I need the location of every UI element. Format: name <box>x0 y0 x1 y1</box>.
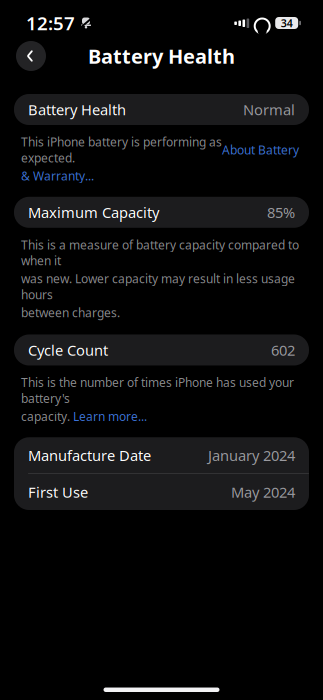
staticText: capacity. <box>21 408 73 424</box>
staticText: Battery Health <box>88 43 235 69</box>
button[interactable]: Maximum Capacity <box>14 197 309 228</box>
staticText: 602 <box>271 340 295 360</box>
button[interactable]: Battery Health <box>14 94 309 125</box>
staticText: & Warranty... <box>21 168 94 184</box>
staticText: May 2024 <box>231 482 295 502</box>
staticText: This is the number of times iPhone has u… <box>21 374 294 406</box>
staticText: Battery Health <box>28 100 126 119</box>
staticText: January 2024 <box>208 446 295 465</box>
staticText: 12:57 <box>26 11 75 35</box>
staticText: Cycle Count <box>28 340 108 360</box>
button[interactable]: Learn more... <box>73 408 147 424</box>
button[interactable]: & Warranty... <box>21 168 94 184</box>
staticText: 85% <box>267 203 295 222</box>
staticText: 34 <box>281 16 293 30</box>
button[interactable]: About Battery <box>222 142 299 158</box>
staticText: Maximum Capacity <box>28 203 159 222</box>
button[interactable]: Back <box>14 39 48 73</box>
staticText: This iPhone battery is performing as exp… <box>21 134 222 166</box>
button[interactable]: Manufacture Date <box>14 437 309 473</box>
staticText: between charges. <box>21 304 120 320</box>
staticText: Normal <box>243 100 295 119</box>
staticText: Learn more... <box>73 408 147 424</box>
staticText: First Use <box>28 482 88 502</box>
button[interactable]: First Use <box>14 474 309 510</box>
button[interactable]: Cycle Count <box>14 334 309 365</box>
staticText: was new. Lower capacity may result in le… <box>21 271 295 303</box>
staticText: This is a measure of battery capacity co… <box>21 237 299 269</box>
staticText: About Battery <box>222 142 299 158</box>
staticText: Manufacture Date <box>28 446 151 465</box>
